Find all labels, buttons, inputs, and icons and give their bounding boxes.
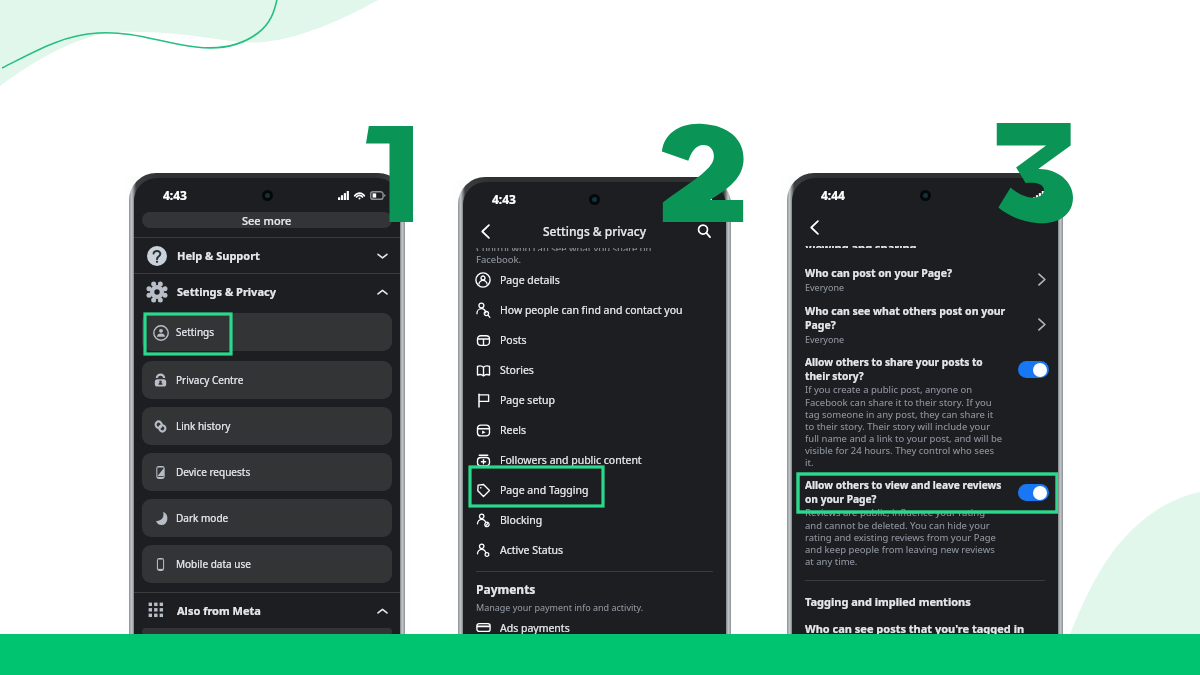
staticText: Stories [500, 363, 534, 377]
button[interactable]: Back [804, 217, 824, 237]
button[interactable]: Page details [463, 265, 726, 295]
staticText: Who can post on your Page? [805, 266, 952, 280]
staticText: Manage your payment info and activity. [476, 601, 644, 613]
button[interactable]: Settings & Privacy [134, 274, 400, 309]
button[interactable]: Who can see what others post on your Pag… [792, 304, 1058, 345]
button[interactable]: Who can post on your Page? [792, 266, 1058, 293]
staticText: 4:43 [492, 191, 516, 207]
staticText: Link history [176, 419, 231, 433]
button[interactable]: Toggle on [1018, 361, 1049, 378]
staticText: Payments [476, 581, 536, 597]
button[interactable]: Ads payments [463, 620, 726, 635]
staticText: Tagging and implied mentions [805, 594, 971, 609]
button[interactable]: Device requests [142, 453, 392, 491]
staticText: Active Status [500, 543, 563, 557]
button[interactable]: Page setup [463, 385, 726, 415]
button[interactable]: Search [694, 221, 714, 241]
button[interactable]: Posts [463, 325, 726, 355]
staticText: Everyone [805, 281, 845, 293]
staticText: Facebook. [476, 253, 522, 264]
staticText: Device requests [176, 465, 251, 479]
button[interactable]: Allow others to share your posts to thei… [792, 355, 1058, 383]
staticText: Blocking [500, 513, 543, 527]
button[interactable]: Help & Support [134, 238, 400, 273]
staticText: Allow others to view and leave reviews o… [805, 478, 1012, 506]
staticText: Also from Meta [177, 603, 261, 618]
staticText: Reels [500, 423, 527, 437]
staticText: 4:44 [821, 187, 845, 203]
staticText: Reviews are public, influence your ratin… [805, 506, 1003, 568]
staticText: Mobile data use [176, 557, 251, 571]
button[interactable]: Toggle on [1018, 484, 1049, 501]
button[interactable]: Stories [463, 355, 726, 385]
button[interactable]: Mobile data use [142, 545, 392, 583]
staticText: 4:43 [163, 187, 187, 203]
button[interactable]: See more [142, 212, 392, 228]
staticText: Who can see what others post on your Pag… [805, 304, 1006, 332]
staticText: Allow others to share your posts to thei… [805, 355, 1012, 383]
staticText: Settings [176, 325, 215, 339]
staticText: Posts [500, 333, 527, 347]
staticText: Viewing and sharing [805, 240, 917, 248]
staticText: Control who can see what you share on [476, 242, 652, 251]
button[interactable]: How people can find and contact you [463, 295, 726, 325]
staticText: Privacy Centre [176, 373, 244, 387]
staticText: See more [242, 213, 292, 228]
button[interactable]: Active Status [463, 535, 726, 565]
staticText: Everyone [805, 333, 845, 345]
staticText: Page details [500, 273, 560, 287]
staticText: Dark mode [176, 511, 229, 525]
button[interactable]: Also from Meta [134, 593, 400, 628]
button[interactable]: Dark mode [142, 499, 392, 537]
button[interactable]: Followers and public content [463, 445, 726, 475]
button[interactable]: Allow others to view and leave reviews o… [792, 478, 1058, 506]
staticText: Settings & Privacy [177, 284, 276, 299]
button[interactable]: Page and Tagging [463, 475, 726, 505]
staticText: Followers and public content [500, 453, 642, 467]
staticText: Help & Support [177, 248, 260, 263]
button[interactable]: Settings [142, 313, 392, 351]
button[interactable]: Link history [142, 407, 392, 445]
staticText: How people can find and contact you [500, 303, 683, 317]
staticText: Page and Tagging [500, 483, 589, 497]
button[interactable]: Reels [463, 415, 726, 445]
staticText: If you create a public post, anyone on F… [805, 383, 1003, 469]
button[interactable]: Back [475, 221, 495, 241]
staticText: Ads payments [500, 621, 570, 635]
button[interactable]: Blocking [463, 505, 726, 535]
staticText: Who can see posts that you're tagged in [805, 621, 1025, 635]
button[interactable]: Privacy Centre [142, 361, 392, 399]
staticText: Settings & privacy [495, 223, 694, 239]
staticText: Page setup [500, 393, 556, 407]
